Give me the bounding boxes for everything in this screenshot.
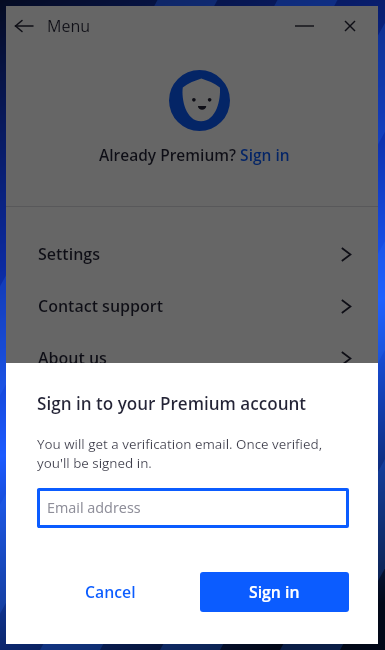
button[interactable]: Minimize — [282, 6, 327, 46]
button[interactable]: Email address — [37, 488, 349, 528]
button[interactable]: Contact support — [6, 280, 378, 332]
staticText: Menu — [47, 15, 90, 37]
button[interactable]: Cancel — [67, 572, 154, 612]
staticText: Contact support — [38, 295, 163, 317]
staticText: About us — [38, 347, 107, 369]
button[interactable]: About us — [6, 332, 378, 384]
button[interactable]: Already Premium? Sign in — [99, 144, 290, 165]
staticText: Settings — [38, 243, 100, 265]
staticText: Already Premium? Sign in — [99, 144, 290, 165]
button[interactable]: Sign in — [200, 572, 349, 612]
staticText: Sign in to your Premium account — [37, 392, 307, 415]
staticText: You will get a verification email. Once … — [37, 435, 323, 472]
staticText: Cancel — [85, 581, 136, 603]
staticText: Email address — [47, 498, 141, 518]
staticText: Sign in — [249, 581, 300, 603]
button[interactable]: Settings — [6, 228, 378, 280]
button[interactable]: Back — [6, 6, 42, 46]
button[interactable]: Close — [327, 6, 372, 46]
